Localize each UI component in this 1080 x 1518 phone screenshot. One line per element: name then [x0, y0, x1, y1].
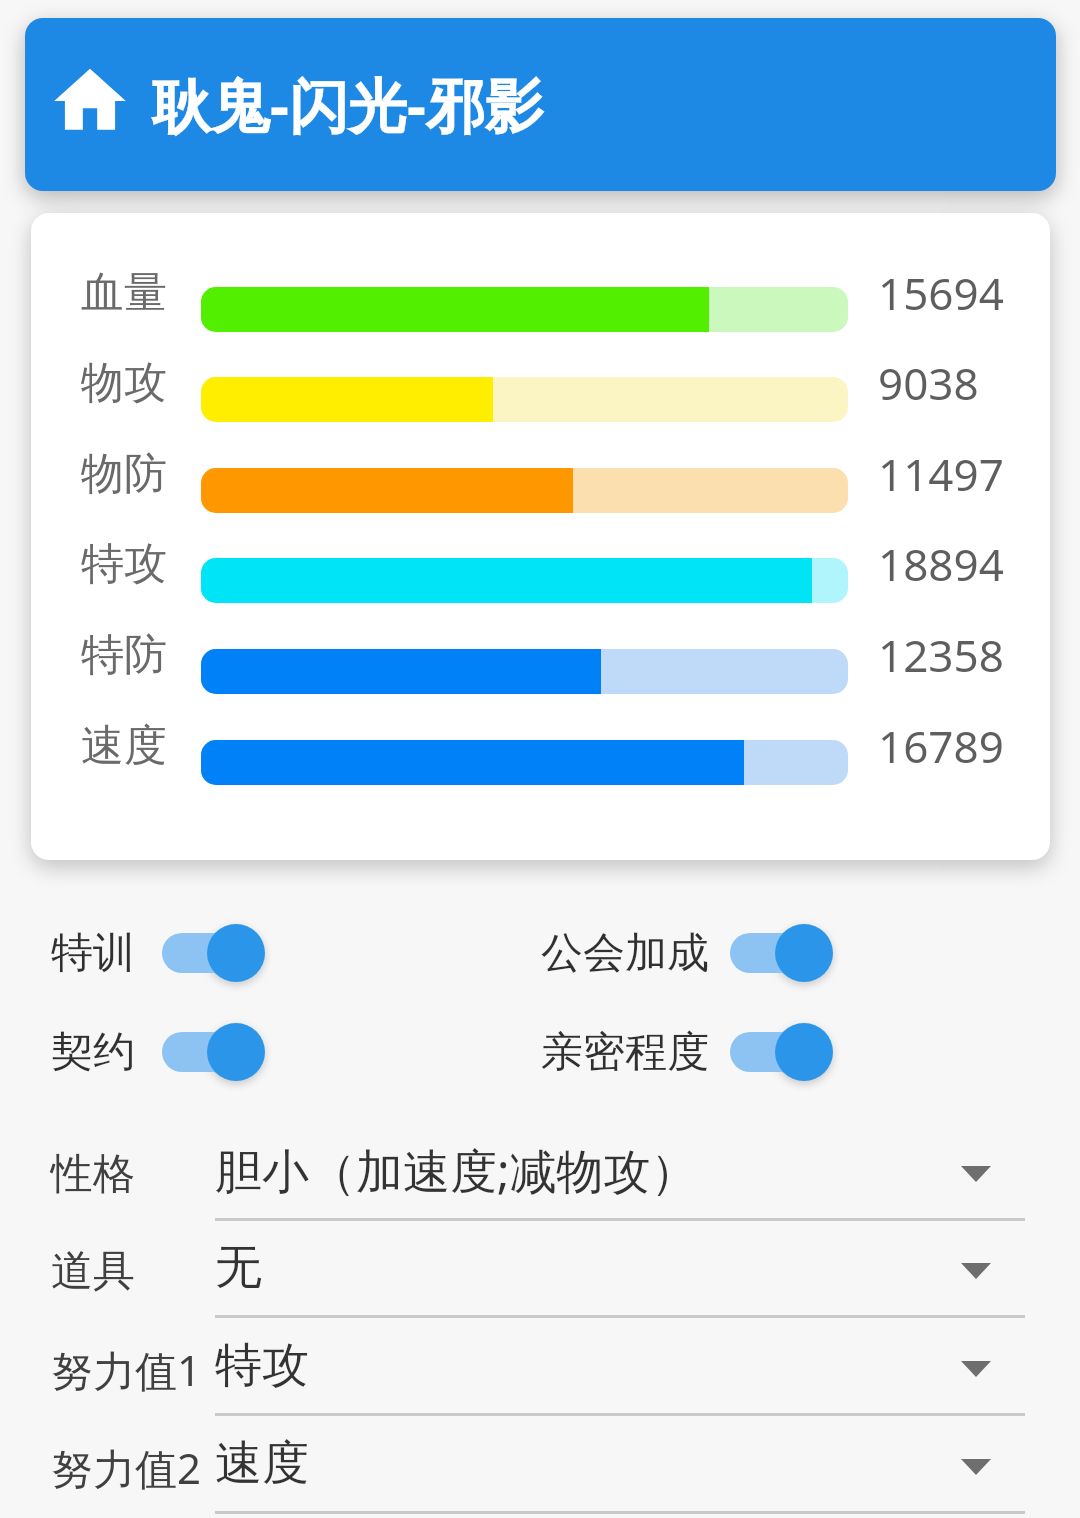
staticText: 特攻	[215, 1336, 309, 1395]
staticText: 物防	[81, 447, 167, 501]
staticText: 耿鬼-闪光-邪影	[152, 64, 544, 145]
staticText: 特防	[81, 628, 167, 682]
staticText: 11497	[878, 444, 1004, 504]
staticText: 亲密程度	[541, 1026, 709, 1079]
button[interactable]	[30, 1320, 1050, 1418]
staticText: 速度	[215, 1434, 309, 1493]
staticText: 胆小（加速度;减物攻）	[215, 1138, 698, 1202]
button[interactable]	[162, 1023, 265, 1081]
staticText: 血量	[81, 266, 167, 320]
staticText: 道具	[51, 1245, 135, 1298]
staticText: 公会加成	[541, 927, 709, 980]
button[interactable]	[30, 1222, 1050, 1320]
staticText: 性格	[51, 1148, 135, 1201]
button[interactable]	[30, 1418, 1050, 1516]
button[interactable]	[730, 1023, 833, 1081]
button[interactable]	[730, 924, 833, 982]
staticText: 速度	[81, 719, 167, 773]
button[interactable]	[162, 924, 265, 982]
button[interactable]	[30, 1125, 1050, 1223]
staticText: 努力值2	[51, 1439, 202, 1496]
staticText: 18894	[878, 534, 1004, 594]
staticText: 16789	[878, 716, 1004, 776]
staticText: 物攻	[81, 356, 167, 410]
staticText: 15694	[878, 263, 1004, 323]
staticText: 无	[215, 1238, 262, 1297]
staticText: 12358	[878, 625, 1004, 685]
button[interactable]	[25, 18, 1056, 191]
staticText: 特训	[51, 927, 135, 980]
staticText: 特攻	[81, 537, 167, 591]
staticText: 9038	[878, 353, 979, 413]
staticText: 努力值1	[51, 1341, 202, 1398]
staticText: 契约	[51, 1026, 135, 1079]
